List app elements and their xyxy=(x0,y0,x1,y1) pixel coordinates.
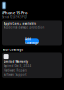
staticText: Serial F2LX9K3PQ1 xyxy=(2,15,28,19)
staticText: Add Coverage xyxy=(25,38,39,45)
staticText: AppleCare+ available xyxy=(4,22,37,26)
staticText: Limited Warranty xyxy=(4,60,28,63)
staticText: Your Coverage xyxy=(2,48,23,51)
staticText: Hardware Repairs xyxy=(4,69,27,72)
staticText: iPhone 15 Pro xyxy=(2,10,27,15)
button[interactable]: Add Coverage xyxy=(25,38,39,44)
staticText: Accidental damage protection xyxy=(4,26,45,29)
staticText: Expired Oct 3, 2024 xyxy=(4,64,32,68)
staticText: Software Support xyxy=(4,73,27,76)
